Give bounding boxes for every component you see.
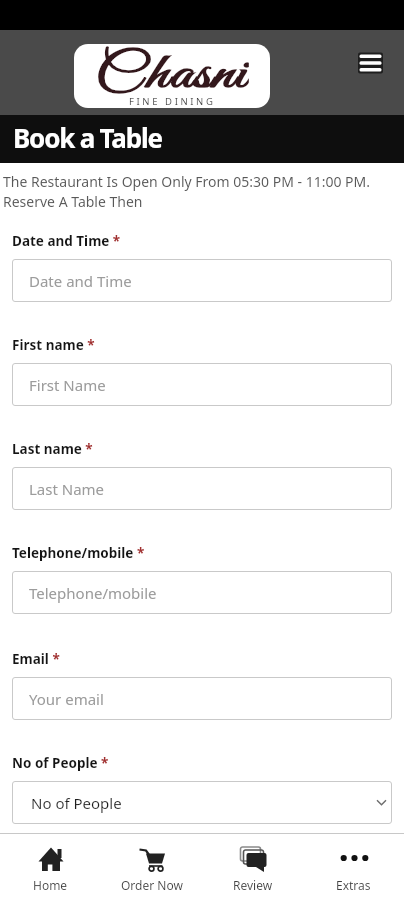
staticText: Extras <box>336 877 371 893</box>
staticText: No of People * <box>12 754 109 772</box>
staticText: Telephone/mobile <box>29 583 157 603</box>
button[interactable]: Your email <box>12 677 392 720</box>
staticText: FINE DINING <box>129 95 216 108</box>
staticText: Telephone/mobile * <box>12 544 145 562</box>
staticText: Email * <box>12 650 60 668</box>
button[interactable]: Review <box>202 834 303 900</box>
staticText: Review <box>233 877 273 893</box>
staticText: No of People <box>31 793 122 813</box>
staticText: Chasni <box>95 44 249 98</box>
staticText: Order Now <box>121 877 183 893</box>
button[interactable] <box>356 49 385 76</box>
button[interactable]: Last Name <box>12 467 392 510</box>
staticText: Date and Time <box>29 271 132 291</box>
button[interactable]: No of People <box>12 781 392 824</box>
staticText: Your email <box>29 689 104 709</box>
staticText: Book a Table <box>13 120 162 155</box>
staticText: Last name * <box>12 440 93 458</box>
staticText: Home <box>33 877 68 893</box>
staticText: Last Name <box>29 479 105 499</box>
button[interactable]: First Name <box>12 363 392 406</box>
staticText: Date and Time * <box>12 232 121 250</box>
button[interactable]: Home <box>0 834 101 900</box>
staticText: First Name <box>29 375 106 395</box>
button[interactable]: Date and Time <box>12 259 392 302</box>
button[interactable]: Extras <box>303 834 404 900</box>
button[interactable]: Order Now <box>101 834 202 900</box>
staticText: The Restaurant Is Open Only From 05:30 P… <box>3 172 371 212</box>
button[interactable]: Telephone/mobile <box>12 571 392 614</box>
staticText: First name * <box>12 336 95 354</box>
